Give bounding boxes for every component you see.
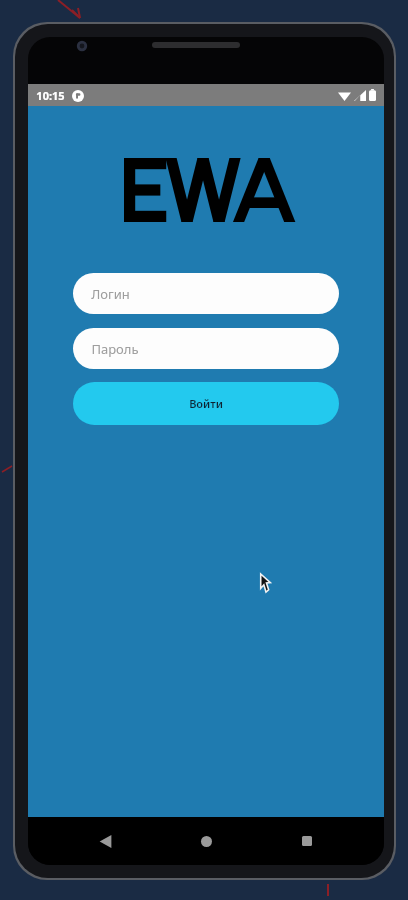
button[interactable]: Back xyxy=(81,817,129,865)
button[interactable]: Войти xyxy=(73,382,339,425)
button[interactable]: Логин xyxy=(73,273,339,314)
button[interactable]: Пароль xyxy=(73,328,339,369)
staticText: Пароль xyxy=(91,340,139,358)
staticText: 10:15 xyxy=(36,88,65,103)
button[interactable]: Recent apps xyxy=(283,817,331,865)
button[interactable]: Home xyxy=(182,817,230,865)
other: EWA logo xyxy=(124,158,288,222)
staticText: Логин xyxy=(91,285,130,303)
staticText: Войти xyxy=(189,396,223,411)
